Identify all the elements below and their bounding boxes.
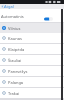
staticText: Trakai: [8, 91, 20, 96]
button[interactable]: Trakai: [0, 88, 64, 98]
button[interactable]: Atgal: [0, 4, 16, 9]
button[interactable]: Klaipėda: [0, 44, 64, 54]
staticText: Panevėžys: [8, 69, 28, 74]
button[interactable]: Šiauliai: [0, 55, 64, 65]
staticText: Vilnius: [8, 26, 21, 31]
button[interactable]: Kaunas: [0, 33, 64, 43]
staticText: Atgal: [4, 4, 14, 9]
button[interactable]: Vilnius: [0, 23, 64, 33]
staticText: Klaipėda: [8, 47, 25, 52]
staticText: Palanga: [8, 80, 24, 85]
other: Automatinis nustatymas toggle: [44, 17, 53, 21]
button[interactable]: Palanga: [0, 77, 64, 87]
staticText: Šiauliai: [8, 58, 22, 63]
button[interactable]: Automatinis nustatymas: [0, 9, 64, 22]
button[interactable]: Panevėžys: [0, 66, 64, 76]
staticText: Kaunas: [8, 36, 22, 41]
staticText: Automatinis nustatymas: [1, 14, 41, 19]
